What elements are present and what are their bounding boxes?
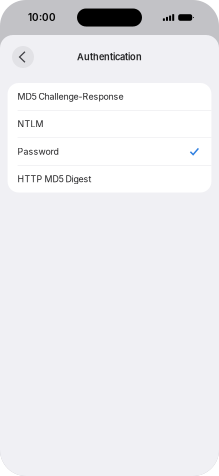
staticText: Authentication <box>77 51 142 62</box>
staticText: MD5 Challenge-Response <box>18 91 124 102</box>
staticText: 10:00 <box>28 11 56 23</box>
staticText: NTLM <box>18 119 44 129</box>
button[interactable]: Back <box>12 46 34 68</box>
button[interactable]: Password <box>8 138 211 165</box>
button[interactable]: NTLM <box>8 110 211 137</box>
button[interactable]: MD5 Challenge-Response <box>8 83 211 110</box>
staticText: Password <box>18 146 59 157</box>
button[interactable]: HTTP MD5 Digest <box>8 165 211 192</box>
staticText: HTTP MD5 Digest <box>18 174 92 184</box>
